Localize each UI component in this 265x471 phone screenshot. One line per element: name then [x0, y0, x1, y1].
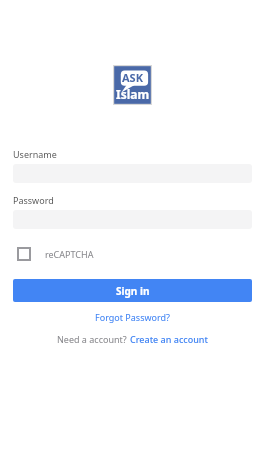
button[interactable]: Create an account — [130, 333, 208, 345]
staticText: Islam — [116, 86, 150, 102]
button[interactable]: reCAPTCHA — [13, 243, 94, 265]
other: ASK Islam logo — [113, 65, 152, 105]
button[interactable]: Forgot Password? — [95, 311, 170, 323]
staticText: reCAPTCHA — [45, 248, 94, 260]
staticText: Username — [13, 148, 57, 160]
button[interactable]: Sign in — [13, 279, 252, 302]
staticText: Password — [13, 194, 54, 206]
staticText: Need a account? — [57, 333, 130, 345]
staticText: ASK — [122, 70, 143, 85]
staticText: Sign in — [116, 284, 150, 298]
